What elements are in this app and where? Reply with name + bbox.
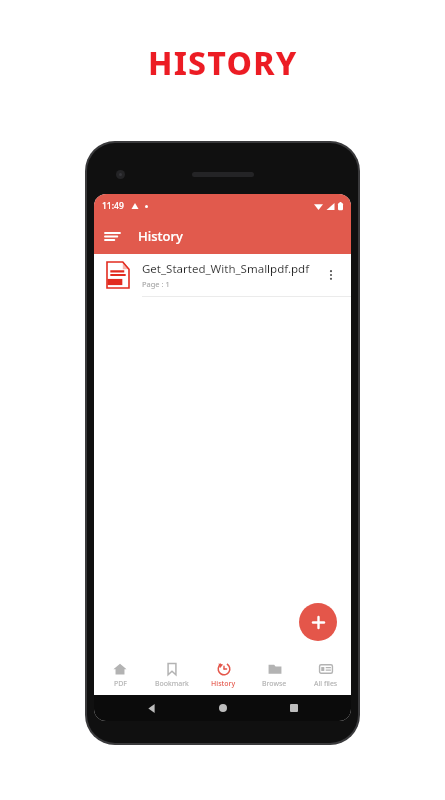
button[interactable]: Browse — [249, 655, 300, 695]
staticText: All files — [314, 679, 338, 689]
staticText: Browse — [262, 679, 287, 689]
button[interactable]: Bookmark — [146, 655, 198, 695]
button[interactable]: Get_Started_With_Smallpdf.pdf — [94, 254, 351, 297]
button[interactable]: Add file — [299, 603, 337, 641]
button[interactable]: History — [198, 655, 249, 695]
staticText: HISTORY — [148, 41, 298, 85]
staticText: PDF — [114, 679, 127, 689]
staticText: History — [138, 227, 183, 245]
button[interactable]: All files — [300, 655, 351, 695]
button[interactable]: Recent apps — [279, 695, 309, 721]
button[interactable]: Open navigation menu — [94, 218, 130, 254]
button[interactable]: Back — [136, 695, 166, 721]
button[interactable]: PDF — [94, 655, 146, 695]
button[interactable]: Home — [208, 695, 238, 721]
staticText: History — [211, 679, 236, 689]
staticText: 11:49 — [102, 200, 124, 212]
staticText: Page : 1 — [142, 279, 170, 289]
button[interactable]: More options — [319, 263, 343, 287]
staticText: Get_Started_With_Smallpdf.pdf — [142, 261, 310, 277]
staticText: Bookmark — [155, 679, 189, 689]
